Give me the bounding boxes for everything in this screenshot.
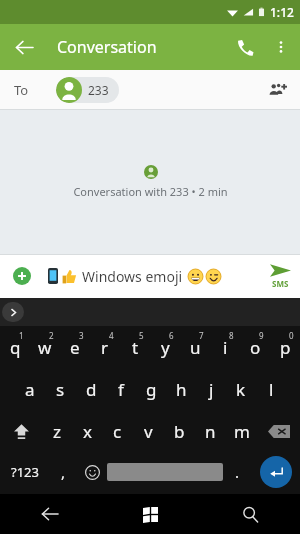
button[interactable]: o	[240, 326, 270, 368]
button[interactable]: Back	[0, 494, 100, 534]
staticText: SMS	[272, 278, 289, 289]
button[interactable]: Period	[223, 452, 252, 492]
button[interactable]: Expand suggestions	[2, 302, 24, 322]
button[interactable]: Back	[6, 29, 42, 65]
button[interactable]: ?123	[0, 452, 49, 492]
button[interactable]: g	[136, 368, 166, 410]
button[interactable]: Emoji	[78, 452, 107, 492]
staticText: i	[223, 336, 228, 359]
button[interactable]: j	[196, 368, 226, 410]
button[interactable]: z	[42, 410, 72, 452]
button[interactable]: y	[150, 326, 180, 368]
staticText: v	[144, 420, 153, 443]
button[interactable]: v	[133, 410, 164, 452]
staticText: 233	[88, 82, 109, 98]
staticText: z	[53, 420, 61, 443]
staticText: l	[269, 378, 274, 401]
staticText: r	[101, 336, 109, 359]
staticText: g	[146, 378, 157, 401]
button[interactable]: f	[106, 368, 136, 410]
staticText: 2	[49, 330, 54, 341]
button[interactable]: Shift	[0, 410, 42, 452]
button[interactable]: Enter	[252, 452, 300, 492]
staticText: 3	[79, 330, 84, 341]
staticText: .	[235, 462, 240, 482]
staticText: ?123	[11, 463, 39, 481]
staticText: d	[86, 378, 97, 401]
button[interactable]: Add people	[260, 73, 294, 107]
staticText: t	[132, 336, 139, 359]
button[interactable]: Backspace	[257, 410, 300, 452]
button[interactable]: More options	[264, 30, 298, 64]
button[interactable]: 233	[56, 77, 119, 103]
staticText: q	[10, 336, 21, 359]
button[interactable]: Search	[200, 494, 300, 534]
button[interactable]: b	[164, 410, 195, 452]
staticText: 4	[109, 330, 114, 341]
staticText: x	[83, 420, 92, 443]
staticText: 1:12	[270, 4, 294, 20]
button[interactable]: Add attachment	[10, 264, 34, 288]
staticText: 5	[139, 330, 144, 341]
staticText: y	[161, 336, 170, 359]
staticText: Conversation with 233 • 2 min	[73, 184, 228, 199]
button[interactable]: Send SMS	[270, 263, 291, 289]
button[interactable]: Home	[100, 494, 200, 534]
staticText: w	[38, 336, 52, 359]
button[interactable]: k	[226, 368, 256, 410]
staticText: o	[250, 336, 261, 359]
staticText: f	[118, 378, 124, 401]
staticText: 9	[259, 330, 264, 341]
button[interactable]: u	[180, 326, 210, 368]
button[interactable]: Call	[226, 28, 264, 66]
staticText: To	[14, 81, 29, 99]
staticText: 0	[289, 330, 294, 341]
staticText: Conversation	[57, 36, 157, 58]
staticText: j	[209, 378, 214, 401]
button[interactable]: c	[102, 410, 133, 452]
staticText: m	[234, 420, 250, 443]
staticText: s	[56, 378, 65, 401]
staticText: c	[113, 420, 122, 443]
button[interactable]: Comma	[49, 452, 78, 492]
button[interactable]: x	[72, 410, 102, 452]
button[interactable]: p	[270, 326, 300, 368]
button[interactable]: n	[195, 410, 226, 452]
button[interactable]: Space	[107, 463, 223, 481]
staticText: k	[236, 378, 246, 401]
staticText: 8	[229, 330, 234, 341]
staticText: h	[176, 378, 187, 401]
staticText: ,	[61, 462, 66, 482]
staticText: u	[190, 336, 201, 359]
button[interactable]: h	[166, 368, 196, 410]
button[interactable]: q	[0, 326, 30, 368]
button[interactable]: m	[226, 410, 257, 452]
button[interactable]: e	[60, 326, 90, 368]
staticText: n	[205, 420, 216, 443]
staticText: p	[280, 336, 291, 359]
button[interactable]: d	[76, 368, 106, 410]
button[interactable]: r	[90, 326, 120, 368]
button[interactable]: w	[30, 326, 60, 368]
button[interactable]: i	[210, 326, 240, 368]
staticText: 6	[169, 330, 174, 341]
staticText: e	[70, 336, 80, 359]
button[interactable]: t	[120, 326, 150, 368]
button[interactable]: l	[256, 368, 286, 410]
staticText: Windows emoji	[82, 267, 183, 286]
staticText: 7	[199, 330, 204, 341]
staticText: b	[174, 420, 185, 443]
staticText: 1	[19, 330, 24, 341]
staticText: a	[25, 378, 35, 401]
button[interactable]: a	[14, 368, 45, 410]
button[interactable]: s	[45, 368, 76, 410]
